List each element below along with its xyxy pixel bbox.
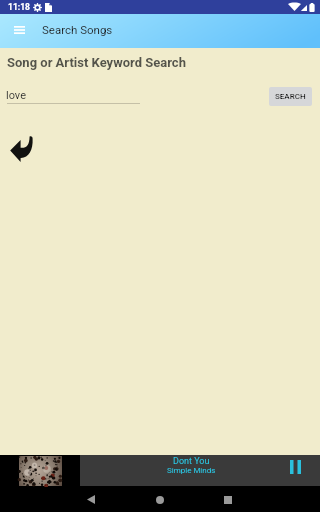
staticText: Simple Minds: [167, 466, 216, 475]
button[interactable]: Home: [140, 487, 180, 512]
button[interactable]: SEARCH: [269, 87, 312, 106]
button[interactable]: Back: [71, 487, 111, 512]
button[interactable]: Open navigation menu: [7, 17, 32, 42]
staticText: SEARCH: [275, 92, 306, 101]
button[interactable]: Dont You: [80, 455, 320, 486]
staticText: Search Songs: [42, 23, 113, 36]
button[interactable]: Recent apps: [208, 487, 248, 512]
staticText: Song or Artist Keyword Search: [7, 55, 186, 70]
staticText: Dont You: [173, 456, 210, 467]
other: Submit search: [9, 135, 34, 162]
button[interactable]: Pause: [284, 454, 306, 480]
staticText: 11:18: [8, 2, 30, 12]
other: Album art: [19, 456, 62, 486]
staticText: love: [6, 89, 26, 102]
